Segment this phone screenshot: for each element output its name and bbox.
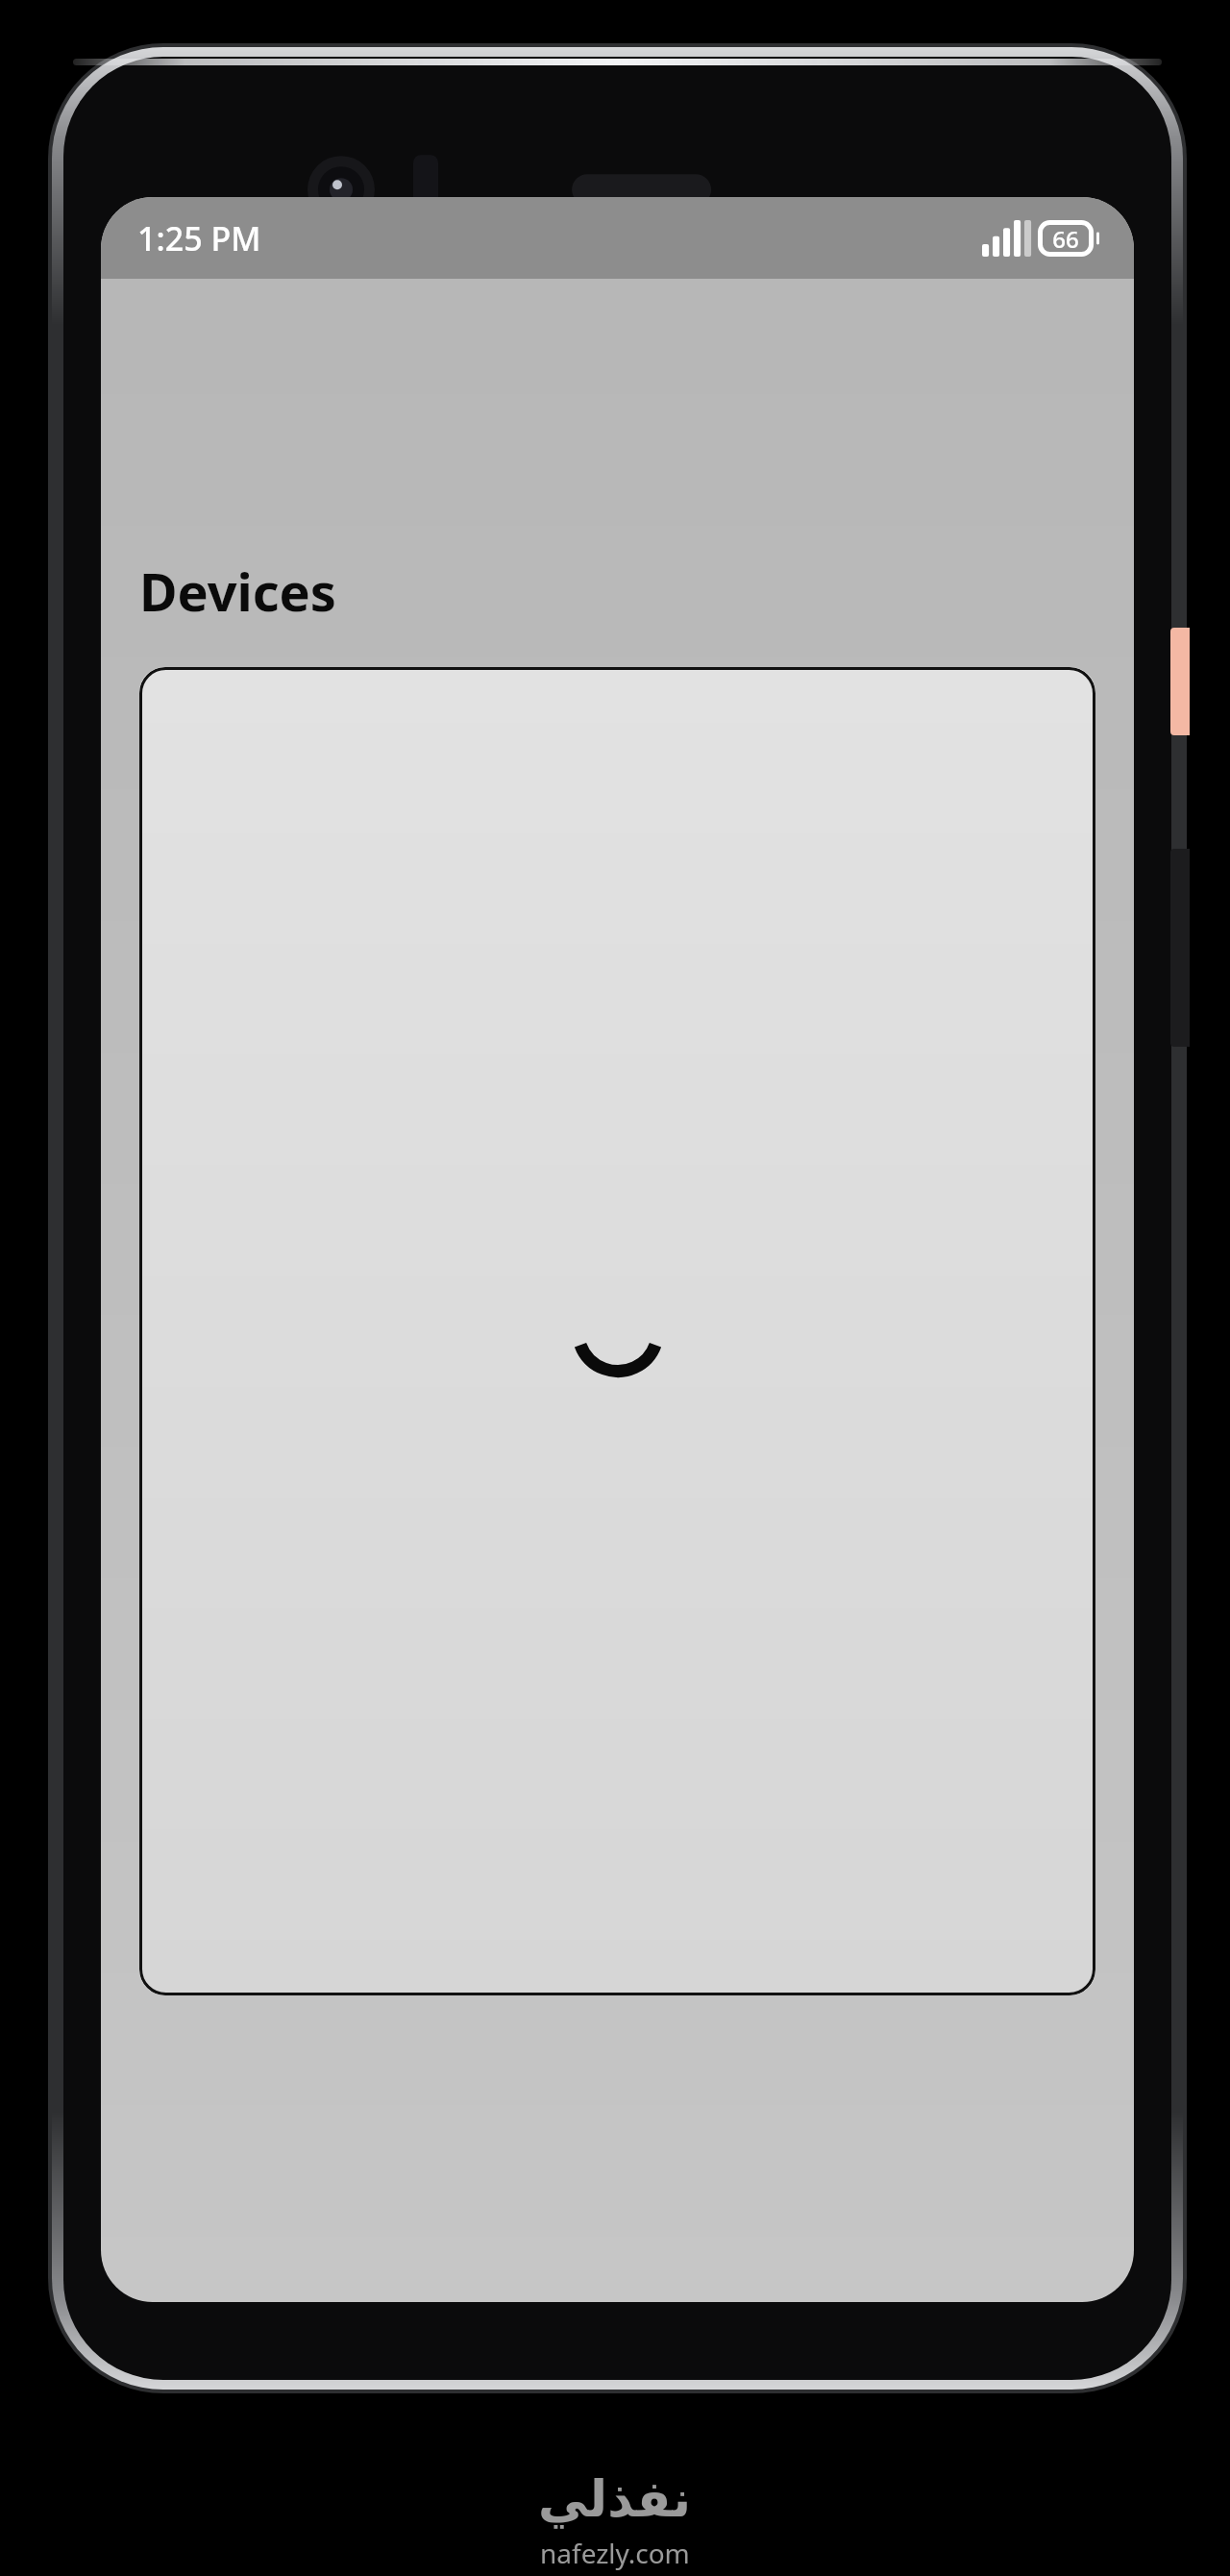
- staticText: nafezly.com: [540, 2535, 690, 2571]
- button[interactable]: Volume button: [1170, 849, 1190, 1047]
- staticText: نفذلي: [538, 2470, 692, 2529]
- staticText: 66: [1038, 223, 1094, 255]
- other: Loading: [572, 1285, 664, 1377]
- button[interactable]: Loading: [139, 667, 1095, 1995]
- staticText: Devices: [139, 556, 336, 627]
- button[interactable]: Power button: [1170, 628, 1190, 735]
- staticText: 1:25 PM: [137, 216, 261, 260]
